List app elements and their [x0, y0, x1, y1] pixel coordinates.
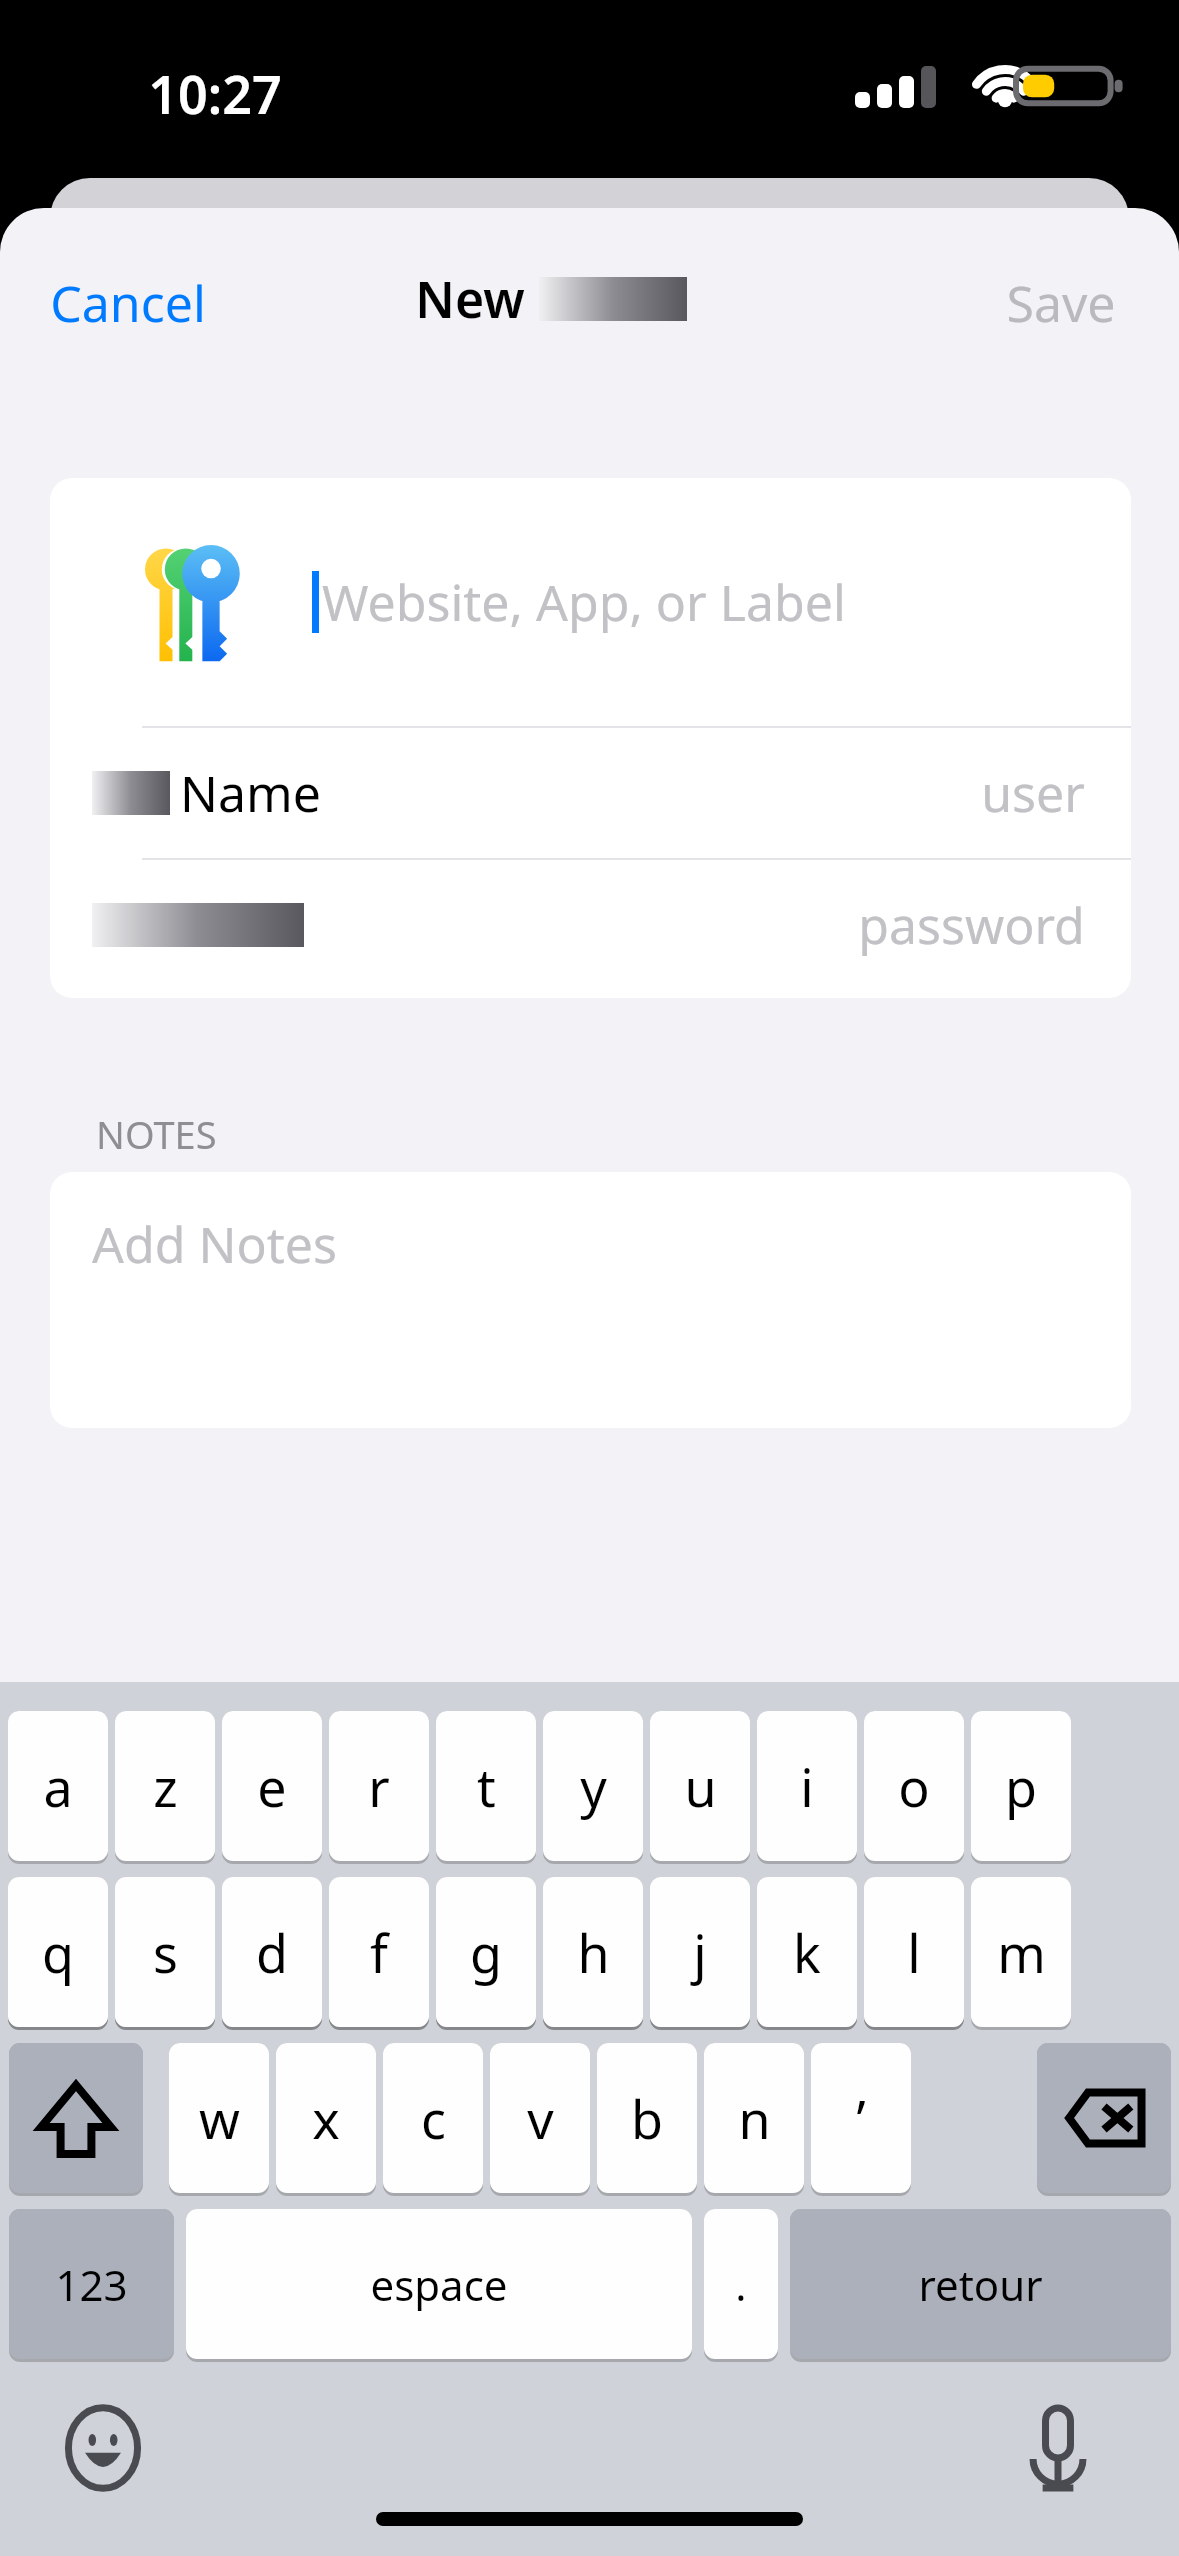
button[interactable]: p	[971, 1711, 1071, 1861]
staticText: New	[415, 265, 525, 333]
staticText: x	[312, 2083, 340, 2154]
button[interactable]: v	[490, 2043, 590, 2193]
staticText: p	[1005, 1751, 1037, 1822]
button[interactable]: k	[650, 1877, 750, 2027]
staticText: v	[527, 2083, 554, 2154]
button[interactable]: password	[50, 860, 1131, 990]
button[interactable]: Emoji keyboard	[55, 2400, 151, 2496]
button[interactable]: Add Notes	[50, 1172, 1131, 1428]
button[interactable]: e	[222, 1711, 322, 1861]
button[interactable]: g	[436, 1877, 536, 2027]
button[interactable]: espace	[186, 2209, 692, 2359]
button[interactable]: w	[169, 2043, 269, 2193]
button[interactable]: a	[8, 1711, 108, 1861]
button[interactable]: t	[436, 1711, 536, 1861]
button[interactable]: q	[8, 1877, 108, 2027]
staticText: i	[800, 1751, 814, 1822]
button[interactable]: d	[222, 1877, 322, 2027]
button[interactable]: c	[383, 2043, 483, 2193]
button[interactable]: s	[115, 1877, 215, 2027]
button[interactable]: q	[8, 1877, 108, 2027]
button[interactable]: Backspace	[1037, 2043, 1171, 2193]
staticText: k	[686, 1917, 714, 1988]
button[interactable]: m	[864, 1877, 964, 2027]
staticText: Name	[180, 759, 321, 827]
staticText: d	[256, 1917, 288, 1988]
staticText: n	[738, 2083, 771, 2154]
button[interactable]: z	[115, 1711, 215, 1861]
staticText: r	[368, 1751, 390, 1822]
button[interactable]: Cancel	[50, 269, 206, 337]
staticText: Save	[1006, 269, 1116, 337]
staticText: 123	[55, 2256, 128, 2313]
other: Cellular signal	[855, 66, 955, 108]
staticText: .	[735, 2256, 747, 2313]
other: Wi-Fi	[975, 62, 1035, 108]
staticText: m	[890, 1917, 939, 1988]
button[interactable]: h	[543, 1877, 643, 2027]
button[interactable]: 123	[9, 2209, 174, 2359]
button[interactable]: Dictation	[1010, 2398, 1106, 2498]
button[interactable]: u	[650, 1711, 750, 1861]
button[interactable]: g	[436, 1877, 536, 2027]
button[interactable]: o	[864, 1711, 964, 1861]
staticText: y	[580, 1751, 607, 1822]
button[interactable]: i	[757, 1711, 857, 1861]
staticText: Cancel	[50, 269, 206, 337]
staticText: h	[577, 1917, 610, 1988]
staticText: f	[370, 1917, 388, 1988]
staticText: l	[907, 1917, 921, 1988]
button[interactable]: m	[971, 1877, 1071, 2027]
staticText: e	[257, 1751, 287, 1822]
other: Battery low power mode	[1016, 62, 1126, 110]
button[interactable]: d	[222, 1877, 322, 2027]
staticText: w	[199, 2083, 240, 2154]
staticText: password	[858, 891, 1085, 959]
button[interactable]: k	[757, 1877, 857, 2027]
staticText: user	[981, 759, 1085, 827]
staticText: q	[42, 1917, 74, 1988]
staticText: NOTES	[96, 1108, 217, 1160]
staticText: 10:27	[148, 58, 282, 129]
button[interactable]: ’	[811, 2043, 911, 2193]
staticText: f	[370, 1917, 388, 1988]
button[interactable]: retour	[790, 2209, 1171, 2359]
button[interactable]: n	[704, 2043, 804, 2193]
button[interactable]: j	[650, 1877, 750, 2027]
button[interactable]: f	[329, 1877, 429, 2027]
button[interactable]: l	[757, 1877, 857, 2027]
staticText: ’	[856, 2083, 866, 2154]
staticText: d	[256, 1917, 288, 1988]
staticText: m	[997, 1917, 1046, 1988]
button[interactable]: f	[329, 1877, 429, 2027]
button[interactable]: x	[276, 2043, 376, 2193]
staticText: o	[898, 1751, 930, 1822]
staticText: h	[577, 1917, 610, 1988]
staticText: u	[684, 1751, 717, 1822]
staticText: b	[631, 2083, 663, 2154]
staticText: espace	[370, 2256, 508, 2313]
button[interactable]: Name	[50, 728, 1131, 858]
staticText: Add Notes	[92, 1210, 337, 1278]
staticText: c	[421, 2083, 446, 2154]
staticText: g	[470, 1917, 502, 1988]
staticText: j	[693, 1917, 707, 1988]
button[interactable]: Save	[1006, 269, 1116, 337]
button[interactable]: h	[543, 1877, 643, 2027]
staticText: g	[470, 1917, 502, 1988]
button[interactable]: r	[329, 1711, 429, 1861]
staticText: q	[42, 1917, 74, 1988]
button[interactable]: .	[704, 2209, 778, 2359]
staticText: retour	[918, 2256, 1043, 2313]
staticText: a	[43, 1751, 73, 1822]
button[interactable]: l	[864, 1877, 964, 2027]
button[interactable]: b	[597, 2043, 697, 2193]
staticText: Website, App, or Label	[322, 568, 846, 636]
staticText: k	[793, 1917, 821, 1988]
staticText: l	[800, 1917, 814, 1988]
button[interactable]: s	[115, 1877, 215, 2027]
button[interactable]: y	[543, 1711, 643, 1861]
button[interactable]: Website, App, or Label	[50, 478, 1131, 726]
staticText: s	[153, 1917, 178, 1988]
button[interactable]: Shift	[9, 2043, 143, 2193]
